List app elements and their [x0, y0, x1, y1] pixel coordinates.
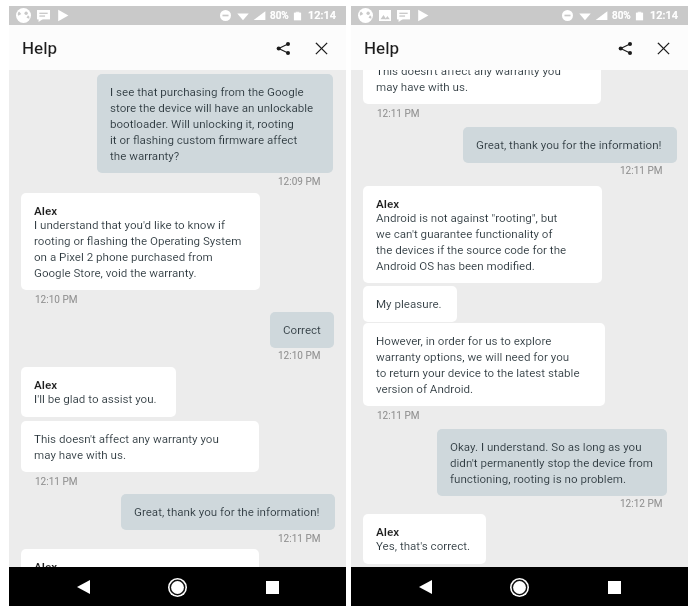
button[interactable]: Alex	[21, 367, 176, 417]
staticText: 12:12 PM	[620, 498, 663, 510]
button[interactable]: Great, thank you for the information!	[121, 494, 335, 530]
staticText: 80%	[612, 10, 631, 22]
button[interactable]: Okay. I understand. So as long as you di…	[437, 429, 667, 496]
button[interactable]: Back	[407, 569, 443, 605]
staticText: Alex	[376, 197, 400, 211]
staticText: However, in order for us to explore warr…	[376, 334, 580, 395]
button[interactable]: Share	[264, 29, 302, 67]
staticText: Okay. I understand. So as long as you di…	[450, 440, 654, 485]
staticText: My pleasure.	[376, 297, 442, 311]
staticText: Help	[22, 38, 58, 58]
button[interactable]: Alex	[21, 193, 260, 290]
staticText: Great, thank you for the information!	[134, 505, 320, 519]
button[interactable]: Alex	[363, 186, 602, 283]
button[interactable]: Correct	[270, 312, 334, 348]
staticText: Alex	[34, 560, 58, 567]
staticText: Alex	[34, 378, 58, 392]
button[interactable]: Home	[501, 569, 537, 605]
staticText: 12:14	[650, 9, 678, 22]
staticText: Great, thank you for the information!	[476, 138, 662, 152]
button[interactable]: Alex	[21, 549, 259, 567]
staticText: Alex	[34, 204, 58, 218]
staticText: 12:11 PM	[620, 165, 663, 177]
staticText: I see that purchasing from the Google st…	[110, 85, 314, 162]
staticText: 12:11 PM	[377, 410, 420, 422]
staticText: 12:11 PM	[35, 476, 78, 488]
button[interactable]: My pleasure.	[363, 286, 457, 322]
staticText: I understand that you'd like to know if …	[34, 218, 242, 279]
button[interactable]: Home	[159, 569, 195, 605]
staticText: 12:09 PM	[278, 176, 321, 188]
button[interactable]: However, in order for us to explore warr…	[363, 323, 605, 406]
staticText: 12:14	[308, 9, 336, 22]
staticText: Help	[364, 38, 400, 58]
button[interactable]: I see that purchasing from the Google st…	[97, 74, 333, 173]
staticText: I'll be glad to assist you.	[34, 392, 157, 406]
button[interactable]: Recents	[254, 569, 290, 605]
staticText: Correct	[283, 323, 321, 337]
button[interactable]: This doesn't affect any warranty you may…	[363, 70, 601, 104]
button[interactable]: Alex	[363, 514, 486, 564]
button[interactable]: This doesn't affect any warranty you may…	[21, 421, 259, 472]
button[interactable]: Recents	[596, 569, 632, 605]
button[interactable]: Close	[644, 29, 682, 67]
staticText: 12:11 PM	[278, 533, 321, 545]
staticText: This doesn't affect any warranty you may…	[34, 432, 219, 461]
button[interactable]: Share	[606, 29, 644, 67]
staticText: Android is not against "rooting", but we…	[376, 211, 567, 272]
staticText: 12:10 PM	[35, 294, 78, 306]
button[interactable]: Close	[302, 29, 340, 67]
button[interactable]: Great, thank you for the information!	[463, 127, 677, 163]
staticText: 80%	[270, 10, 289, 22]
staticText: 12:11 PM	[377, 108, 420, 120]
button[interactable]: Back	[65, 569, 101, 605]
staticText: Yes, that's correct.	[376, 539, 471, 553]
staticText: This doesn't affect any warranty you may…	[376, 70, 561, 93]
staticText: Alex	[376, 525, 400, 539]
staticText: 12:10 PM	[278, 350, 321, 362]
